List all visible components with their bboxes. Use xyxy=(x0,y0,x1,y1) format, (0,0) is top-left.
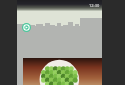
staticText: 12:30 xyxy=(89,3,100,8)
button[interactable]: Play xyxy=(22,23,31,32)
